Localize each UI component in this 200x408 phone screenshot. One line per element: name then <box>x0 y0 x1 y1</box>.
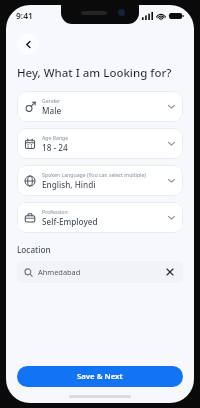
button[interactable]: Gender <box>17 91 183 122</box>
staticText: 18 - 24 <box>42 142 68 153</box>
staticText: Age Range <box>42 134 69 141</box>
button[interactable]: Age Range <box>17 128 183 159</box>
button[interactable]: Profession <box>17 202 183 233</box>
staticText: Profession <box>42 208 68 215</box>
staticText: 9:41 <box>16 10 33 22</box>
staticText: Save & Next <box>77 371 123 382</box>
staticText: Gender <box>42 97 61 104</box>
staticText: Hey, What I am Looking for? <box>17 65 172 81</box>
button[interactable]: Ahmedabad <box>17 261 183 283</box>
staticText: English, Hindi <box>42 179 96 190</box>
staticText: Ahmedabad <box>38 267 81 277</box>
button[interactable]: Clear location <box>164 266 176 278</box>
button[interactable]: Spoken Language (You can select multiple… <box>17 165 183 196</box>
staticText: Spoken Language (You can select multiple… <box>42 171 146 178</box>
staticText: Male <box>42 105 62 116</box>
staticText: Location <box>17 244 51 255</box>
button[interactable]: Back <box>17 33 39 55</box>
button[interactable]: Save & Next <box>17 366 183 387</box>
staticText: Self-Employed <box>42 216 98 227</box>
